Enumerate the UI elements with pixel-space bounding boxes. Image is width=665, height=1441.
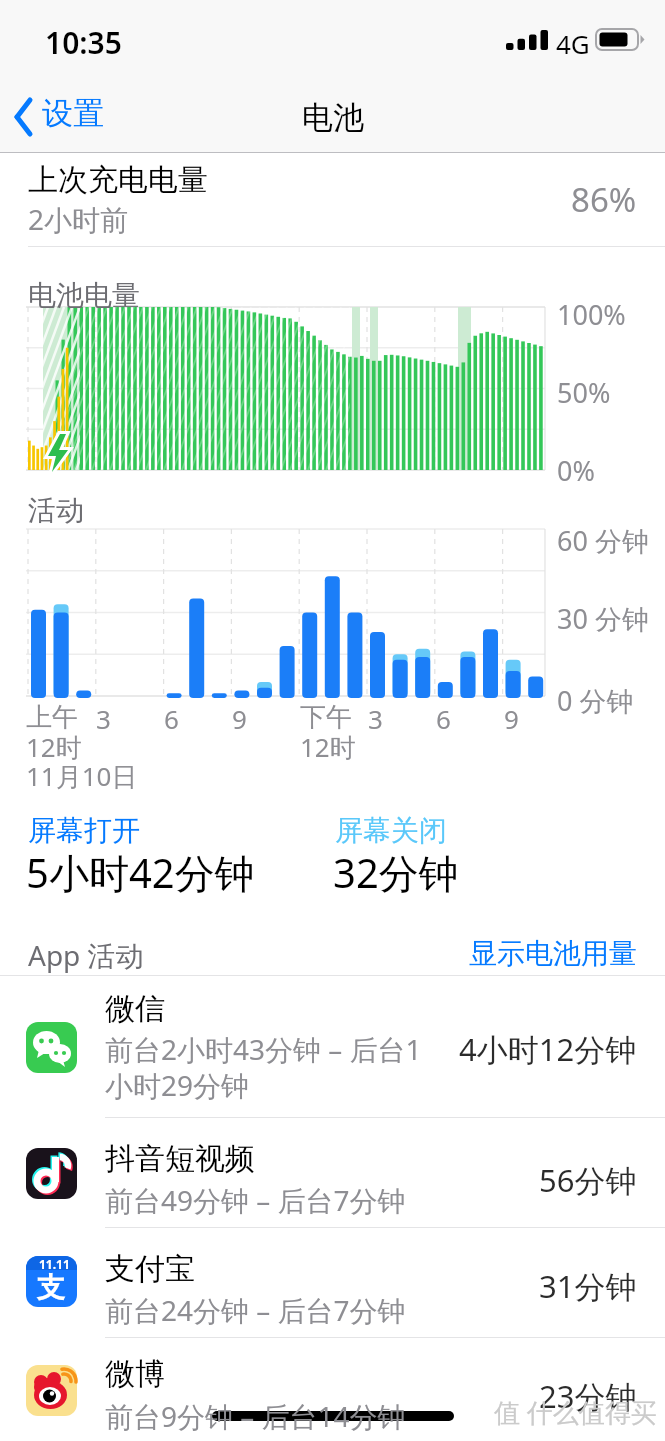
staticText: 11月10日 bbox=[26, 758, 138, 794]
staticText: 9 bbox=[504, 701, 519, 736]
staticText: 小时29分钟 bbox=[105, 1066, 250, 1104]
staticText: 12时 bbox=[300, 729, 356, 765]
staticText: 30 分钟 bbox=[557, 600, 649, 637]
staticText: 12时 bbox=[26, 729, 82, 765]
staticText: 显示电池用量 bbox=[469, 936, 637, 971]
staticText: 上午 bbox=[26, 701, 78, 734]
staticText: 屏幕关闭 bbox=[335, 813, 447, 848]
staticText: 50% bbox=[557, 374, 611, 411]
staticText: 31分钟 bbox=[539, 1265, 637, 1307]
staticText: 5小时42分钟 bbox=[26, 845, 255, 900]
button[interactable]: 支付宝 bbox=[0, 1228, 665, 1337]
staticText: 前台24分钟 – 后台7分钟 bbox=[105, 1291, 406, 1329]
staticText: 2小时前 bbox=[28, 200, 129, 238]
staticText: 屏幕打开 bbox=[28, 813, 140, 848]
staticText: 活动 bbox=[28, 493, 84, 528]
staticText: 4G bbox=[556, 26, 590, 61]
staticText: 11.11 bbox=[39, 1256, 70, 1272]
staticText: 抖音短视频 bbox=[105, 1140, 255, 1178]
staticText: 设置 bbox=[42, 94, 104, 133]
staticText: 10:35 bbox=[45, 22, 122, 63]
button[interactable]: 微博 bbox=[0, 1338, 665, 1441]
staticText: 微信 bbox=[105, 990, 165, 1028]
staticText: 6 bbox=[436, 701, 451, 736]
staticText: 电池 bbox=[302, 98, 364, 137]
staticText: 前台2小时43分钟 – 后台1 bbox=[105, 1030, 422, 1068]
staticText: 23分钟 bbox=[539, 1375, 637, 1417]
button[interactable]: 设置 bbox=[8, 92, 118, 142]
staticText: 上次充电电量 bbox=[28, 161, 208, 199]
staticText: 前台49分钟 – 后台7分钟 bbox=[105, 1181, 406, 1219]
staticText: 60 分钟 bbox=[557, 522, 649, 559]
staticText: 86% bbox=[571, 177, 637, 222]
staticText: App 活动 bbox=[28, 936, 144, 974]
staticText: 6 bbox=[164, 701, 179, 736]
staticText: 前台9分钟 – 后台14分钟 bbox=[105, 1397, 406, 1435]
staticText: 下午 bbox=[300, 701, 352, 734]
staticText: 4小时12分钟 bbox=[459, 1028, 637, 1070]
button[interactable]: 显示电池用量 bbox=[400, 930, 665, 972]
staticText: 9 bbox=[232, 701, 247, 736]
staticText: 100% bbox=[557, 296, 626, 333]
staticText: 电池电量 bbox=[28, 278, 140, 313]
staticText: 0 分钟 bbox=[557, 682, 634, 719]
staticText: 3 bbox=[368, 701, 383, 736]
button[interactable]: 微信 bbox=[0, 976, 665, 1117]
staticText: 支 bbox=[37, 1270, 65, 1305]
staticText: 0% bbox=[557, 452, 595, 489]
staticText: 微博 bbox=[105, 1355, 165, 1393]
staticText: 56分钟 bbox=[539, 1159, 637, 1201]
staticText: 值 什么值得买 bbox=[494, 1394, 657, 1430]
staticText: 支付宝 bbox=[105, 1250, 195, 1288]
staticText: 3 bbox=[96, 701, 111, 736]
button[interactable]: 抖音短视频 bbox=[0, 1118, 665, 1227]
staticText: 32分钟 bbox=[333, 845, 459, 900]
